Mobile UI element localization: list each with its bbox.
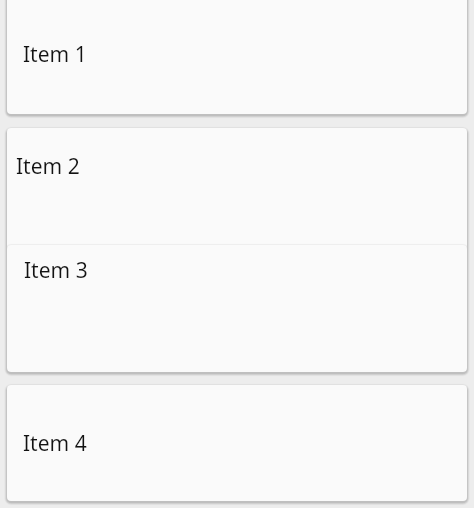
staticText: Item 3 (24, 256, 88, 285)
button[interactable]: Item 2 (7, 128, 467, 372)
staticText: Item 1 (23, 40, 87, 69)
button[interactable]: Item 3 (7, 245, 467, 372)
button[interactable]: Item 4 (7, 385, 467, 501)
staticText: Item 4 (23, 429, 87, 458)
staticText: Item 2 (16, 152, 80, 181)
button[interactable]: Item 1 (7, 0, 467, 114)
